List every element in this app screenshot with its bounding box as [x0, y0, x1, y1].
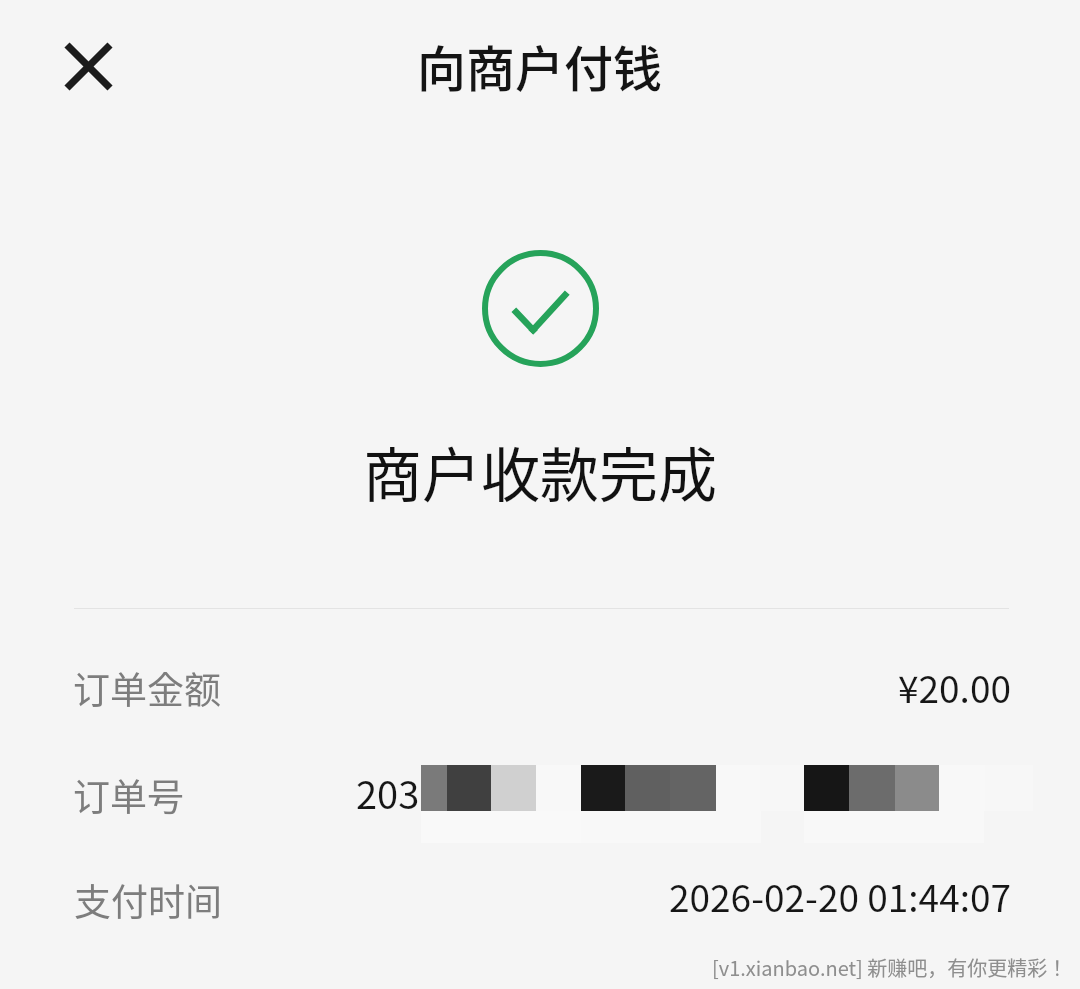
staticText: 203: [356, 765, 420, 820]
button[interactable]: 订单金额 ¥20.00: [74, 640, 1009, 736]
button[interactable]: 支付时间 2026-02-20 01:44:07: [74, 850, 1009, 946]
other: Payment succeeded: [482, 250, 599, 367]
button[interactable]: 订单号: [74, 745, 1009, 841]
staticText: 商户收款完成: [363, 429, 718, 509]
staticText: 订单号: [73, 768, 184, 822]
staticText: [v1.xianbao.net] 新赚吧，有你更精彩！: [712, 953, 1068, 982]
button[interactable]: Close: [40, 18, 136, 114]
staticText: ¥20.00: [898, 660, 1011, 714]
staticText: 支付时间: [74, 873, 222, 927]
staticText: 2026-02-20 01:44:07: [669, 869, 1012, 923]
staticText: 向商户付钱: [417, 30, 663, 92]
staticText: 订单金额: [73, 661, 221, 715]
